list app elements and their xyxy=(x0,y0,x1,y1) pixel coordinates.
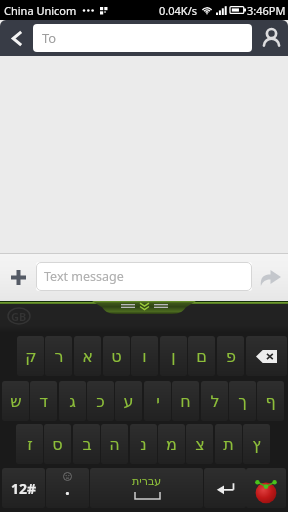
button[interactable]: ן xyxy=(160,336,187,376)
button[interactable]: ץ xyxy=(243,424,270,464)
button[interactable]: ק xyxy=(17,336,44,376)
staticText: ס xyxy=(52,435,63,454)
staticText: ך xyxy=(238,392,247,411)
button[interactable]: מ xyxy=(158,424,185,464)
button[interactable]: א xyxy=(74,336,101,376)
button[interactable]: עברית xyxy=(90,468,203,508)
button[interactable]: ב xyxy=(73,424,100,464)
staticText: 12# xyxy=(11,479,37,498)
button[interactable]: Send xyxy=(252,253,288,301)
button[interactable]: ט xyxy=(103,336,130,376)
button[interactable]: To xyxy=(33,24,252,52)
button[interactable]: Hide keyboard xyxy=(92,301,196,314)
staticText: ח xyxy=(180,392,191,411)
staticText: ר xyxy=(54,347,64,366)
staticText: To xyxy=(42,29,57,47)
button[interactable]: ש xyxy=(2,381,29,421)
button[interactable]: 12# xyxy=(2,468,45,508)
staticText: ן xyxy=(171,347,176,366)
button[interactable]: Backspace xyxy=(246,336,287,376)
button[interactable]: י xyxy=(144,381,171,421)
button[interactable]: ס xyxy=(44,424,71,464)
button[interactable]: ם xyxy=(188,336,215,376)
button[interactable]: ו xyxy=(131,336,158,376)
staticText: ד xyxy=(39,392,48,411)
staticText: 3:46PM xyxy=(247,3,286,18)
button[interactable]: צ xyxy=(186,424,213,464)
button[interactable]: Add attachment xyxy=(0,253,36,301)
button[interactable]: Text message xyxy=(36,262,252,291)
staticText: 0.04K/s xyxy=(159,3,197,18)
staticText: ץ xyxy=(252,435,261,454)
button[interactable]: ך xyxy=(229,381,256,421)
button[interactable]: ל xyxy=(201,381,228,421)
staticText: Text message xyxy=(44,268,124,285)
staticText: ש xyxy=(10,392,22,411)
staticText: ת xyxy=(223,435,234,454)
button[interactable]: כ xyxy=(87,381,114,421)
staticText: ב xyxy=(82,435,92,454)
staticText: פ xyxy=(226,347,236,366)
staticText: עברית xyxy=(132,475,162,488)
button[interactable]: ר xyxy=(45,336,72,376)
button[interactable]: Emoji xyxy=(246,468,286,508)
staticText: ל xyxy=(210,392,220,411)
button[interactable]: פ xyxy=(217,336,244,376)
staticText: . xyxy=(65,477,70,500)
staticText: ק xyxy=(25,347,37,366)
staticText: ט xyxy=(111,347,122,366)
button[interactable]: ף xyxy=(257,381,284,421)
staticText: ג xyxy=(69,392,76,411)
staticText: ם xyxy=(196,347,207,366)
button[interactable]: ד xyxy=(30,381,57,421)
button[interactable]: . xyxy=(46,468,89,508)
staticText: ף xyxy=(265,392,276,411)
button[interactable]: ה xyxy=(101,424,128,464)
button[interactable]: ת xyxy=(215,424,242,464)
staticText: צ xyxy=(195,435,205,454)
staticText: ה xyxy=(109,435,120,454)
staticText: GB xyxy=(11,309,27,324)
button[interactable]: Back xyxy=(0,20,33,56)
staticText: א xyxy=(82,347,93,366)
button[interactable]: ג xyxy=(59,381,86,421)
button[interactable]: Add contact xyxy=(254,20,288,56)
staticText: נ xyxy=(140,435,147,454)
staticText: ו xyxy=(142,347,147,366)
staticText: כ xyxy=(96,392,105,411)
button[interactable]: ע xyxy=(115,381,142,421)
button[interactable]: ח xyxy=(172,381,199,421)
button[interactable]: ז xyxy=(16,424,43,464)
staticText: מ xyxy=(166,435,177,454)
staticText: ז xyxy=(27,435,33,454)
staticText: China Unicom xyxy=(4,3,77,18)
staticText: ע xyxy=(123,392,134,411)
button[interactable]: Enter xyxy=(204,468,246,508)
button[interactable]: נ xyxy=(130,424,157,464)
staticText: י xyxy=(156,392,160,411)
